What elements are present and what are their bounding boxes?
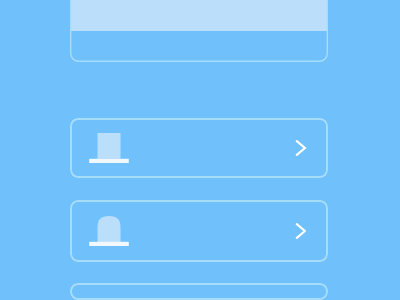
button[interactable]: Open item [70,283,328,300]
button[interactable]: List item [70,0,328,62]
button[interactable]: Open item [70,200,328,262]
button[interactable]: Open item [70,118,328,178]
